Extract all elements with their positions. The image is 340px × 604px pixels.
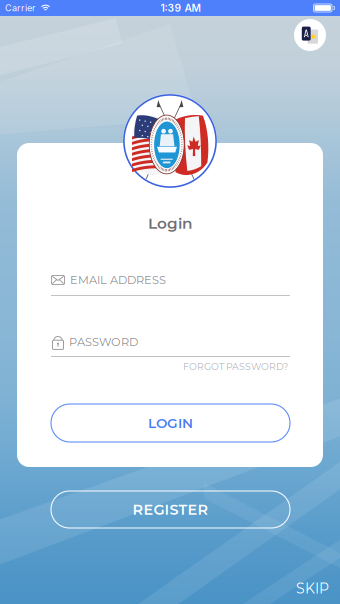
button[interactable]: FORGOT PASSWORD? bbox=[183, 361, 288, 372]
staticText: FORGOT PASSWORD? bbox=[183, 361, 288, 372]
button[interactable]: REGISTER bbox=[51, 491, 290, 528]
button[interactable]: Account bbox=[294, 19, 326, 51]
staticText: EMAIL ADDRESS bbox=[70, 273, 166, 287]
staticText: 1:39 AM bbox=[160, 2, 200, 14]
staticText: Login bbox=[148, 214, 193, 233]
staticText: SKIP bbox=[296, 580, 329, 597]
staticText: Carrier bbox=[5, 2, 35, 13]
button[interactable]: SKIP bbox=[296, 580, 329, 597]
staticText: LOGIN bbox=[148, 415, 193, 431]
staticText: REGISTER bbox=[132, 501, 208, 518]
staticText: PASSWORD bbox=[69, 335, 138, 349]
button[interactable]: LOGIN bbox=[51, 404, 290, 442]
